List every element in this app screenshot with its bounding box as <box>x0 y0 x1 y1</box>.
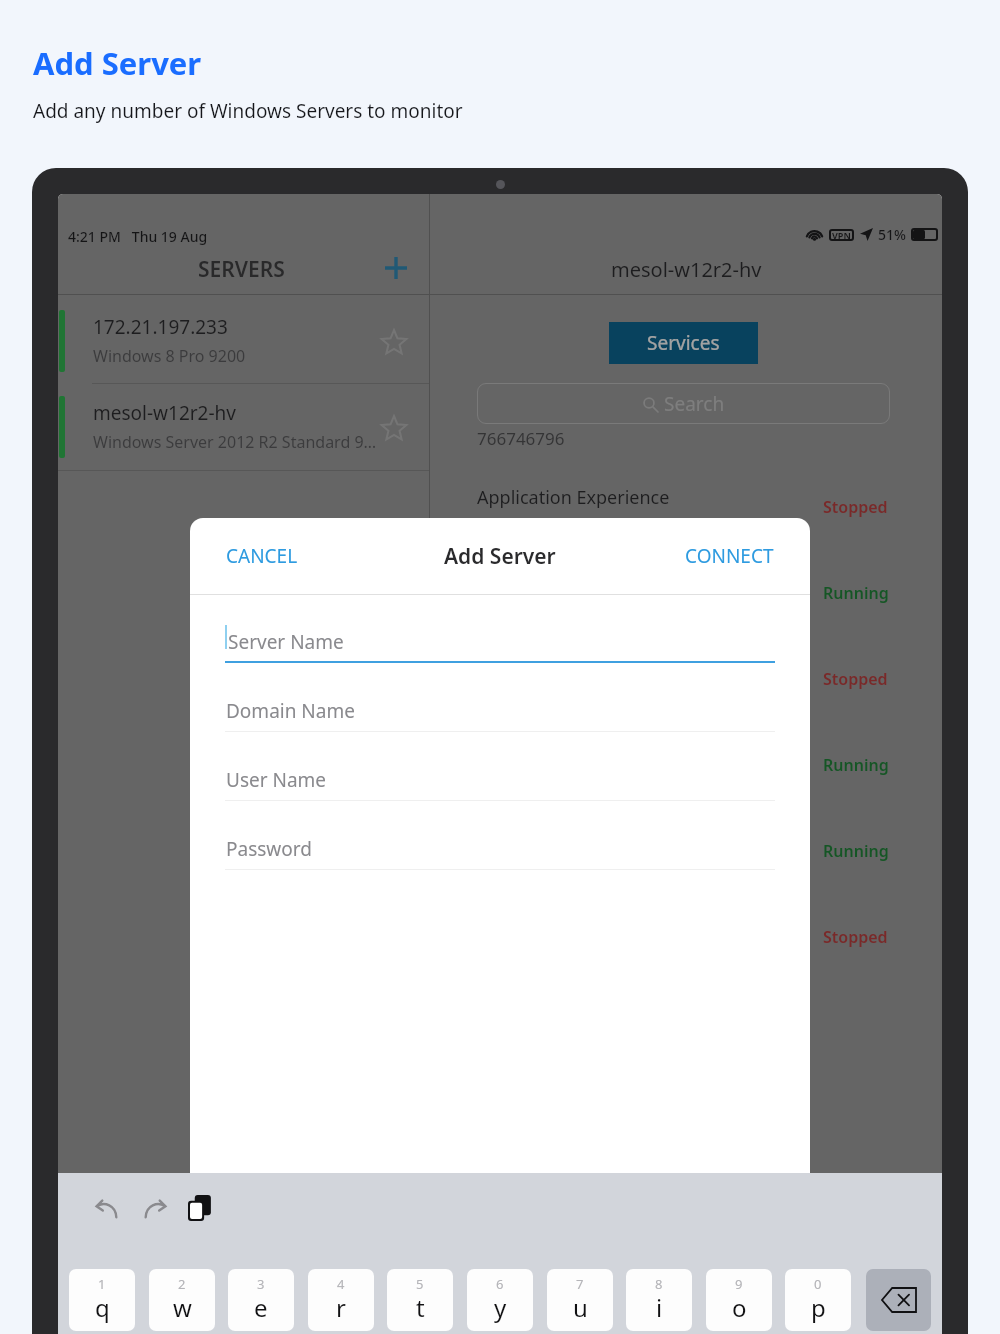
staticText: 5 <box>416 1275 424 1293</box>
button[interactable]: Services <box>609 322 758 364</box>
staticText: 9 <box>735 1275 743 1293</box>
staticText: mesol-w12r2-hv <box>93 400 236 426</box>
button[interactable]: Domain Name <box>225 663 775 732</box>
button[interactable]: Backspace <box>866 1269 931 1331</box>
staticText: q <box>95 1291 110 1324</box>
staticText: w <box>173 1291 192 1324</box>
staticText: 2 <box>178 1275 186 1293</box>
staticText: 51% <box>878 225 906 244</box>
staticText: t <box>416 1291 425 1324</box>
staticText: 7 <box>576 1275 584 1293</box>
staticText: Search <box>664 391 725 417</box>
staticText: Running <box>823 754 889 776</box>
button[interactable]: mesol-w12r2-hv <box>58 384 429 470</box>
staticText: 0 <box>814 1275 822 1293</box>
button[interactable]: 7 <box>547 1269 613 1331</box>
button[interactable]: Add server <box>380 252 412 284</box>
button[interactable]: Password <box>225 801 775 870</box>
staticText: Application Experience <box>477 485 670 510</box>
staticText: Add Server <box>444 542 556 571</box>
button[interactable]: CONNECT <box>667 518 792 594</box>
staticText: Password <box>226 836 312 862</box>
staticText: VPN <box>832 229 851 241</box>
staticText: Running <box>823 582 889 604</box>
staticText: r <box>336 1291 346 1324</box>
button[interactable]: 5 <box>387 1269 453 1331</box>
button[interactable]: 0 <box>785 1269 851 1331</box>
staticText: Stopped <box>823 668 888 690</box>
staticText: mesol-w12r2-hv <box>611 256 762 283</box>
staticText: y <box>494 1291 507 1324</box>
staticText: 1 <box>98 1275 106 1293</box>
staticText: Add any number of Windows Servers to mon… <box>33 98 463 124</box>
button[interactable]: 172.21.197.233 <box>58 298 429 384</box>
staticText: Stopped <box>823 926 888 948</box>
staticText: Windows 8 Pro 9200 <box>93 345 246 367</box>
staticText: 766746796 <box>477 427 565 450</box>
staticText: u <box>573 1291 588 1324</box>
button[interactable]: Redo <box>137 1193 171 1227</box>
button[interactable]: 1 <box>69 1269 135 1331</box>
button[interactable]: 8 <box>626 1269 692 1331</box>
staticText: Add Server <box>33 42 202 84</box>
button[interactable]: Paste <box>185 1192 217 1224</box>
staticText: User Name <box>226 767 327 793</box>
staticText: i <box>656 1291 663 1324</box>
button[interactable]: Undo <box>91 1193 125 1227</box>
staticText: Domain Name <box>226 698 355 724</box>
staticText: e <box>254 1291 268 1324</box>
button[interactable]: Server Name <box>225 594 775 663</box>
button[interactable]: CANCEL <box>208 518 316 594</box>
staticText: Stopped <box>823 496 888 518</box>
button[interactable]: 2 <box>149 1269 215 1331</box>
staticText: 172.21.197.233 <box>93 314 228 340</box>
staticText: Server Name <box>228 629 344 655</box>
button[interactable]: 6 <box>467 1269 533 1331</box>
staticText: 3 <box>257 1275 265 1293</box>
staticText: Windows Server 2012 R2 Standard 9… <box>93 431 377 453</box>
staticText: CONNECT <box>685 543 774 569</box>
button[interactable]: User Name <box>225 732 775 801</box>
button[interactable]: 3 <box>228 1269 294 1331</box>
staticText: 6 <box>496 1275 504 1293</box>
staticText: Services <box>647 330 720 356</box>
staticText: p <box>811 1291 826 1324</box>
staticText: o <box>732 1291 747 1324</box>
staticText: CANCEL <box>226 543 298 569</box>
staticText: Running <box>823 840 889 862</box>
staticText: 4:21 PM Thu 19 Aug <box>68 227 208 246</box>
staticText: 4 <box>337 1275 345 1293</box>
button[interactable]: 9 <box>706 1269 772 1331</box>
button[interactable]: Search <box>477 383 890 424</box>
button[interactable]: 4 <box>308 1269 374 1331</box>
staticText: 8 <box>655 1275 663 1293</box>
staticText: SERVERS <box>198 255 285 284</box>
